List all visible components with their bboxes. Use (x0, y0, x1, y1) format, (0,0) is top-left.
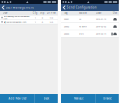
staticText: 20002 (64, 25, 69, 28)
staticText: Dr Pref (47, 11, 56, 15)
staticText: No (50, 16, 53, 19)
staticText: User Management (6, 6, 34, 9)
staticText: Browse (103, 97, 111, 100)
staticText: A4 (79, 18, 81, 20)
button[interactable]: Back (61, 4, 67, 11)
staticText: Civic (79, 32, 84, 35)
staticText: 2019-03-14 (96, 32, 106, 35)
staticText: Trip (40, 11, 45, 15)
staticText: 2019-01-12 (96, 18, 106, 20)
staticText: X5 BMW (79, 25, 87, 28)
staticText: 1 (35, 16, 36, 19)
staticText: Manage (74, 97, 83, 100)
staticText: 20003 (64, 32, 69, 35)
staticText: No (50, 20, 53, 23)
staticText: bill@autoscansolutions.com (4, 21, 27, 23)
button[interactable]: 20003 (61, 30, 119, 37)
staticText: Date (96, 11, 101, 15)
staticText: Tag (64, 11, 68, 15)
button[interactable]: Back (0, 4, 6, 11)
button[interactable]: bill@autoscansolutions.com (0, 20, 58, 24)
staticText: User (2, 11, 7, 15)
staticText: 0 (42, 20, 43, 23)
button[interactable]: Browse (96, 94, 119, 103)
staticText: Back (44, 97, 49, 100)
staticText: bcp.legend@autoscansolutions.com (4, 15, 31, 20)
staticText: Cfg (33, 11, 38, 15)
staticText: Use (113, 11, 117, 15)
button[interactable]: Add New User (0, 94, 35, 103)
staticText: Model (79, 11, 87, 15)
button[interactable]: 20001 (61, 15, 119, 22)
staticText: Send Configuration (67, 6, 97, 9)
button[interactable]: Manage (61, 94, 96, 103)
button[interactable]: Back (35, 94, 58, 103)
button[interactable]: 20002 (61, 23, 119, 30)
staticText: 1 (35, 20, 36, 23)
staticText: 0 (42, 16, 43, 19)
staticText: Add New User (8, 97, 26, 100)
staticText: 2019-02-02 (96, 25, 106, 28)
staticText: 20001 (64, 18, 69, 20)
button[interactable]: bcp.legend@autoscansolutions.com (0, 15, 58, 19)
